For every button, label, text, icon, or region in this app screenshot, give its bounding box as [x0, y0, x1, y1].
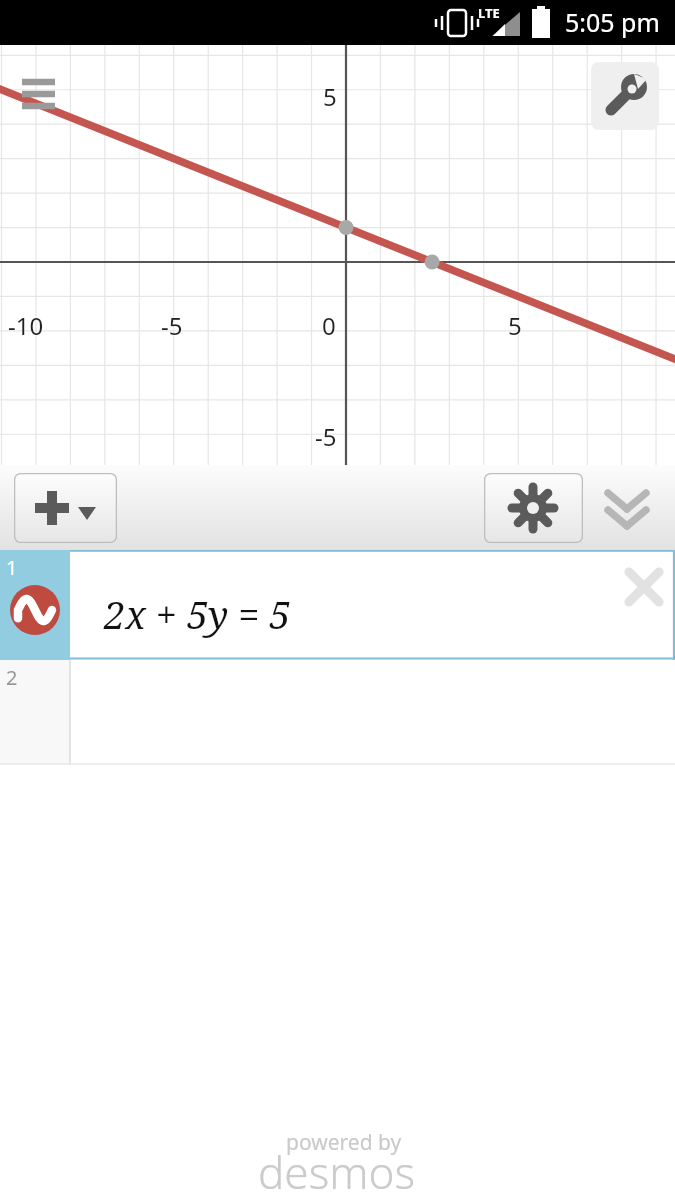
- staticText: 5: [508, 309, 522, 342]
- staticText: desmos: [258, 1142, 416, 1200]
- staticText: 2x + 5y = 5: [104, 588, 291, 640]
- staticText: -10: [8, 309, 44, 342]
- staticText: 1: [6, 554, 18, 581]
- button[interactable]: Settings: [484, 473, 583, 543]
- staticText: -5: [315, 420, 337, 453]
- button[interactable]: Tools: [591, 62, 659, 130]
- staticText: 2: [6, 664, 18, 691]
- button[interactable]: Add expression: [14, 473, 117, 543]
- staticText: 5: [323, 80, 337, 113]
- staticText: powered by: [286, 1128, 402, 1157]
- button[interactable]: Collapse: [600, 480, 656, 536]
- staticText: LTE: [478, 4, 500, 22]
- staticText: -5: [161, 309, 183, 342]
- button[interactable]: 1: [0, 550, 675, 660]
- staticText: 0: [322, 309, 336, 342]
- staticText: 5:05 pm: [565, 5, 660, 39]
- button[interactable]: 2: [0, 660, 675, 765]
